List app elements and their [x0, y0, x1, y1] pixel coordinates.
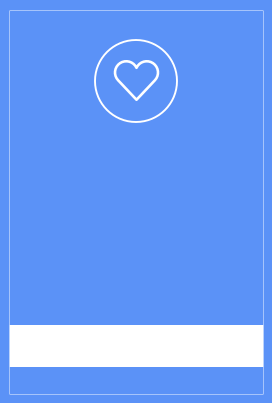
button[interactable]: Favourite: [95, 40, 177, 122]
button[interactable]: Continue: [9, 325, 263, 367]
